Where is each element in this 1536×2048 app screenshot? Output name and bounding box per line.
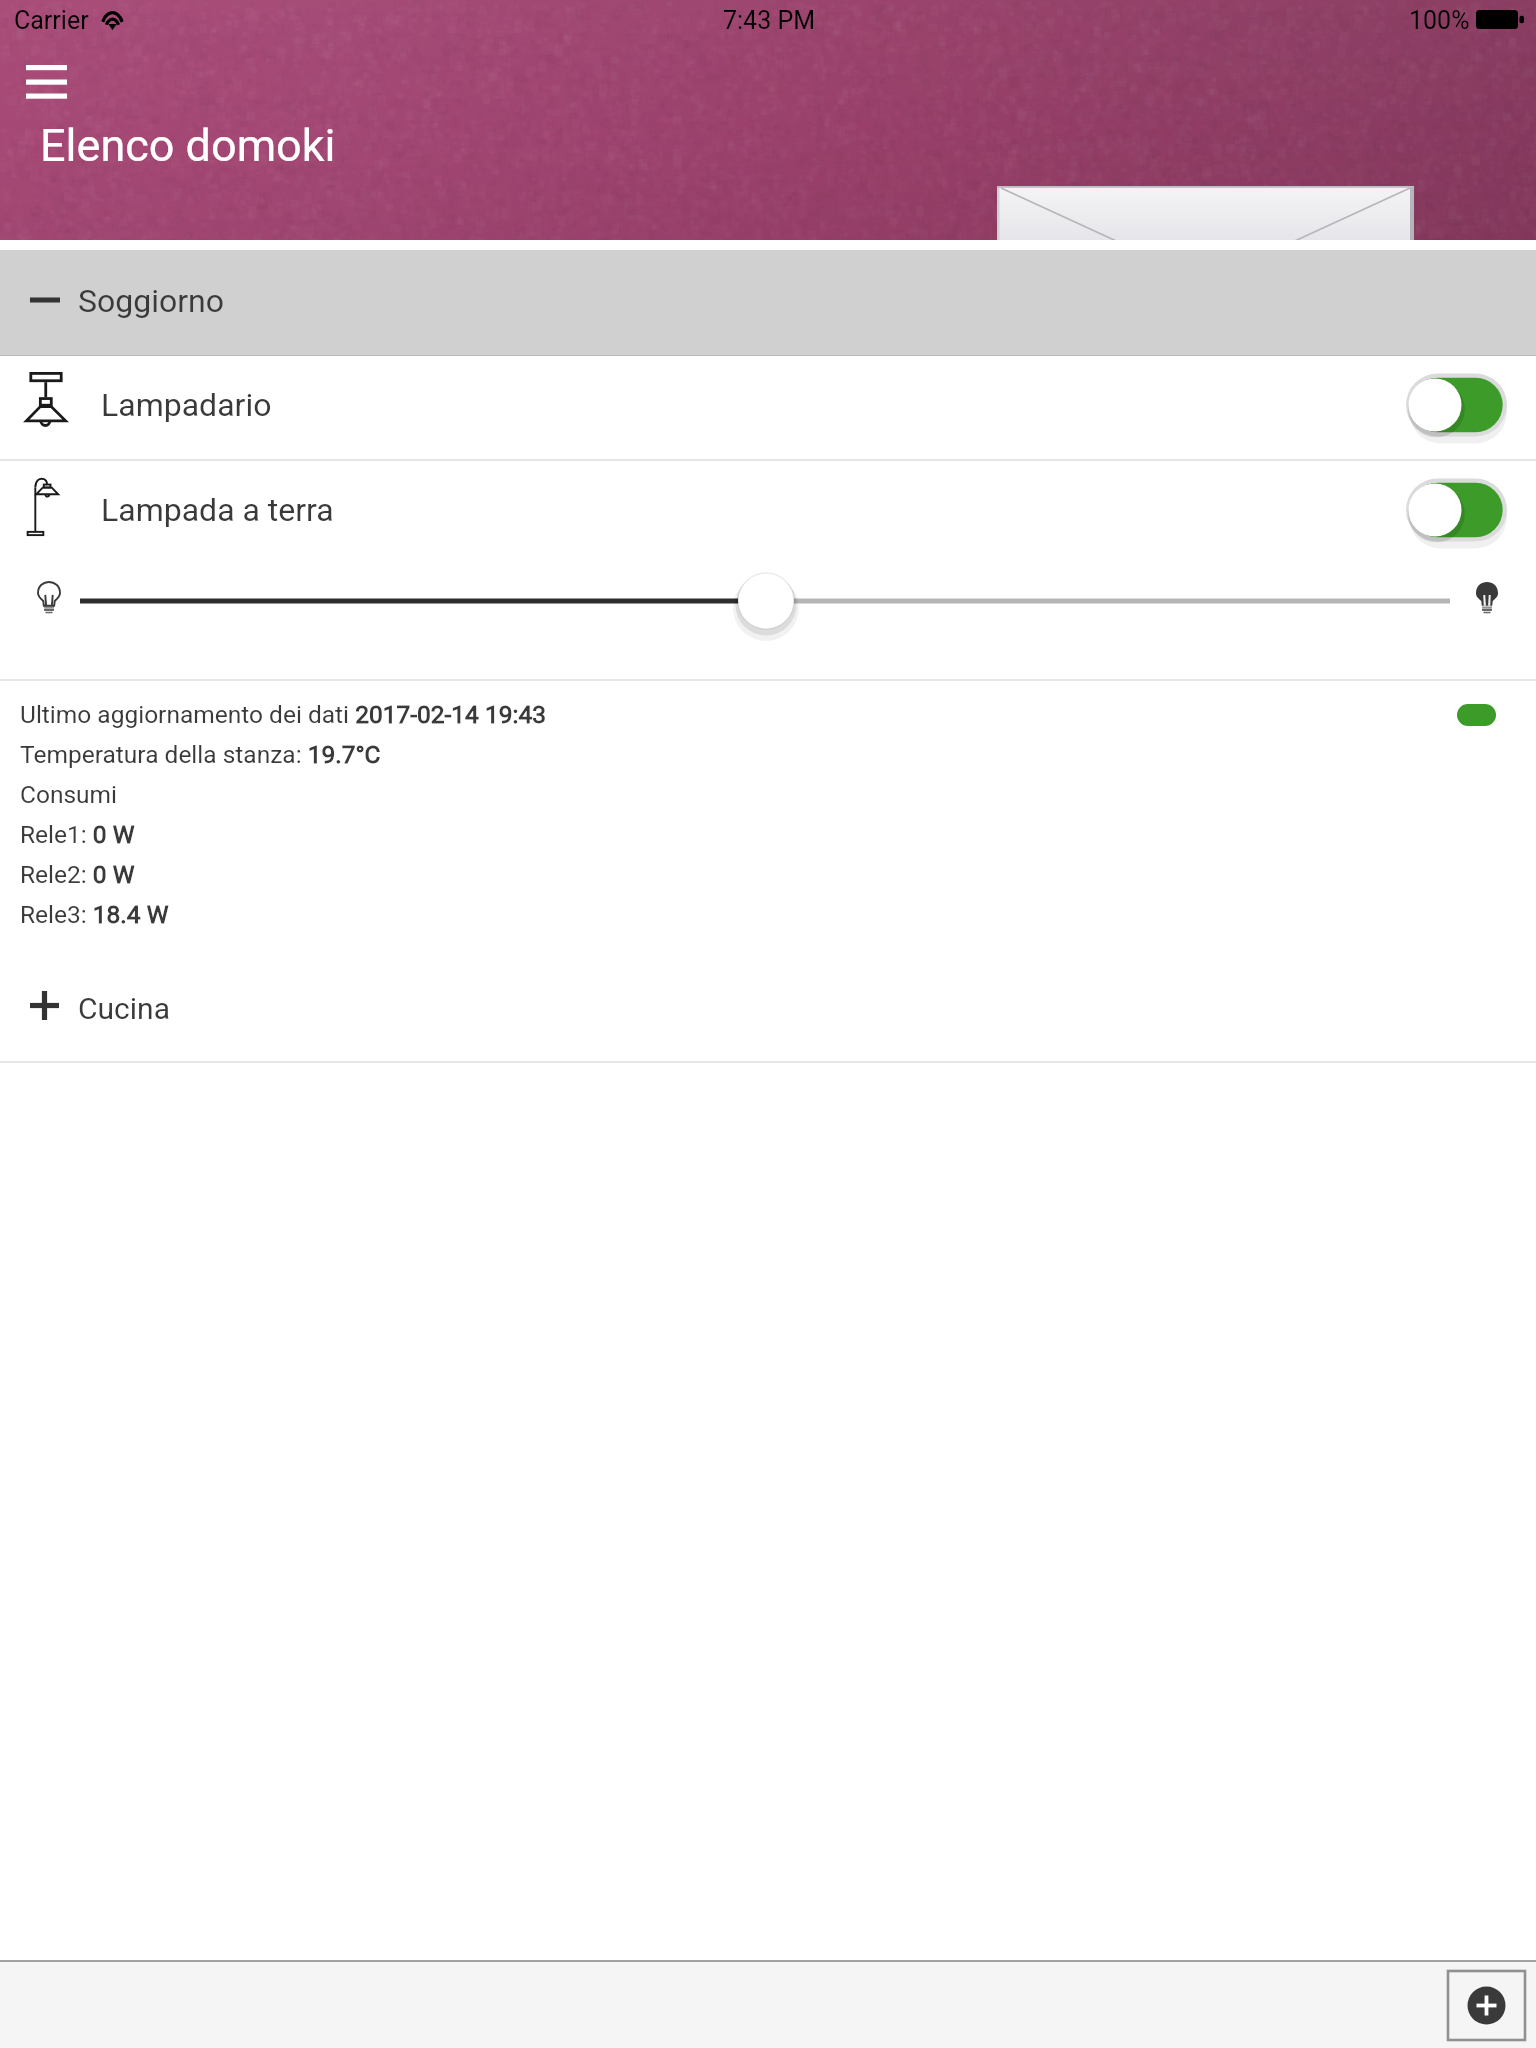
staticText: Rele2: 0 W <box>20 860 135 889</box>
button[interactable]: Lampadario <box>0 356 1536 459</box>
staticText: 100% <box>1409 6 1470 35</box>
button[interactable]: Cucina <box>0 963 1536 1061</box>
staticText: Ultimo aggiornamento dei dati 2017-02-14… <box>20 700 546 729</box>
staticText: Elenco domoki <box>40 119 336 172</box>
staticText: Carrier <box>14 6 89 35</box>
staticText: Lampadario <box>101 386 272 424</box>
button[interactable]: Soggiorno <box>0 250 1536 355</box>
staticText: Rele1: 0 W <box>20 820 135 849</box>
staticText: Temperatura della stanza: 19.7°C <box>20 740 381 769</box>
button[interactable]: Lampada a terra <box>0 461 1536 564</box>
button[interactable]: Dimmer <box>0 564 1536 679</box>
staticText: Consumi <box>20 780 118 809</box>
staticText: Cucina <box>78 991 170 1026</box>
button[interactable]: Toggle <box>1406 369 1507 441</box>
staticText: Rele3: 18.4 W <box>20 900 169 929</box>
button[interactable]: Toggle <box>1406 474 1507 546</box>
staticText: 7:43 PM <box>723 6 816 35</box>
button[interactable]: Menu <box>10 52 82 108</box>
staticText: Lampada a terra <box>101 491 334 529</box>
staticText: Soggiorno <box>78 282 224 320</box>
button[interactable]: Status indicator <box>1457 704 1496 726</box>
button[interactable]: Add <box>1448 1971 1525 2040</box>
